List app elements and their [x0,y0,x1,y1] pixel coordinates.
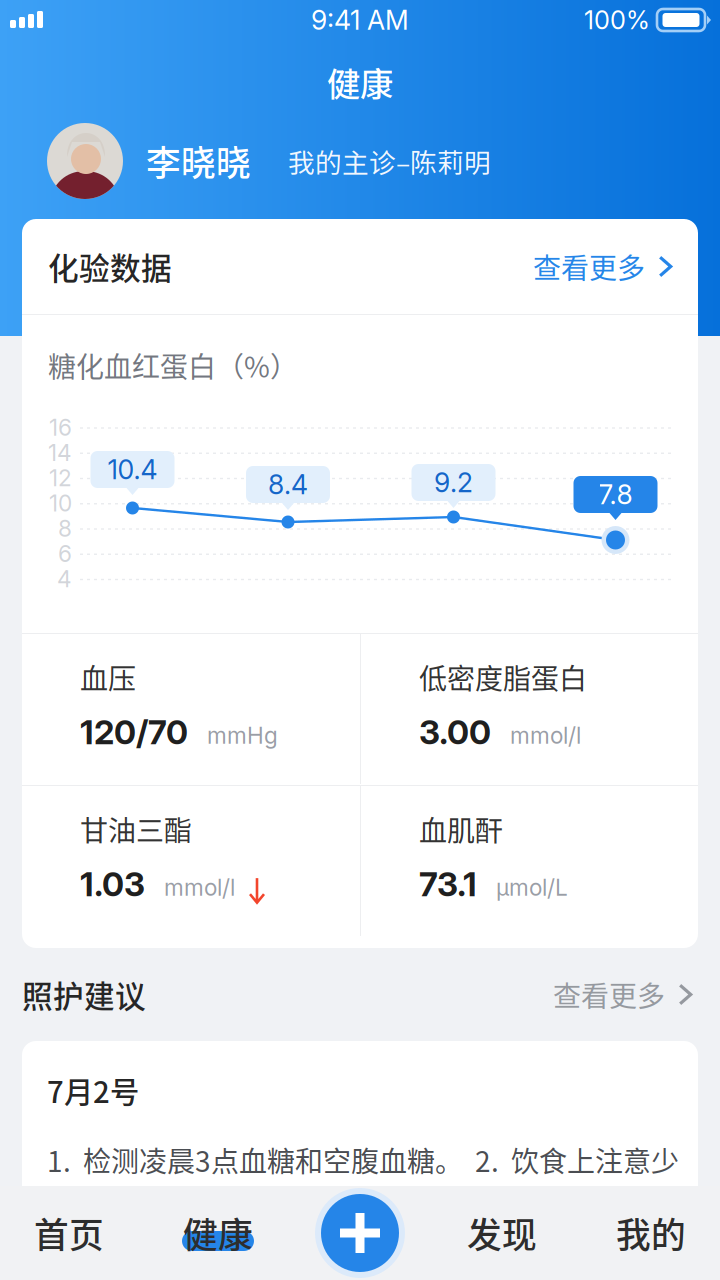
button[interactable]: 化验数据 [22,219,698,314]
staticText: 8 [58,515,72,542]
staticText: 12 [49,464,72,492]
button[interactable]: Add [315,1188,405,1278]
staticText: mmol/l [164,874,235,901]
staticText: 4 [57,565,72,593]
staticText: 发现 [467,1208,537,1258]
staticText: mmol/l [510,722,581,749]
staticText: 血肌酐 [419,809,503,849]
staticText: mmHg [207,722,278,749]
staticText: 14 [48,439,72,466]
staticText: 我的 [616,1208,686,1258]
staticText: 73.1 [419,864,477,904]
staticText: 100% [584,5,650,35]
staticText: 糖化血红蛋白（%） [48,345,298,385]
staticText: 查看更多 [533,246,645,287]
staticText: 10 [49,489,72,517]
staticText: 10.4 [107,453,157,486]
staticText: 血压 [80,657,136,697]
staticText: 7.8 [598,478,632,511]
staticText: 8.4 [268,468,308,501]
staticText: 低密度脂蛋白 [419,657,587,697]
staticText: 1.03 [80,864,145,904]
button[interactable]: 首页 [14,1208,124,1258]
staticText: 健康 [327,58,393,106]
staticText: 120/70 [80,712,188,752]
staticText: 6 [58,540,72,567]
staticText: 9:41 AM [311,4,409,36]
button[interactable]: 发现 [447,1208,557,1258]
staticText: 我的主诊–陈莉明 [288,142,491,180]
staticText: 3.00 [419,712,491,752]
staticText: 1. 检测凌晨3点血糖和空腹血糖。 2. 饮食上注意少油少盐清淡饮食，三餐定时定… [47,1139,679,1221]
staticText: 甘油三酯 [80,809,192,849]
staticText: 李晓晓 [146,136,251,186]
staticText: 健康 [183,1208,253,1258]
button[interactable]: 照护建议 [22,948,698,1041]
staticText: 化验数据 [48,244,172,289]
staticText: 首页 [34,1208,104,1258]
staticText: 16 [49,414,72,441]
button[interactable]: 我的 [596,1208,706,1258]
button[interactable]: 健康 [163,1208,273,1258]
staticText: 查看更多 [553,974,665,1015]
staticText: μmol/L [496,874,568,901]
staticText: 9.2 [434,466,473,499]
staticText: 7月2号 [47,1069,139,1111]
staticText: 照护建议 [22,972,146,1017]
